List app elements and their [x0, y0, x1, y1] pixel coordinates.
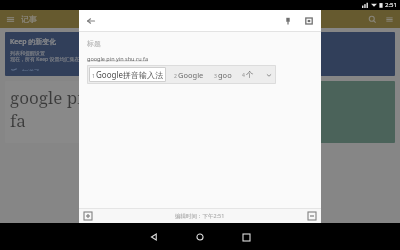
button[interactable]: Recents — [235, 226, 257, 248]
button[interactable]: Keep 的新变化 — [5, 32, 197, 76]
staticText: 记事 — [21, 14, 37, 24]
staticText: google pin yin shu ru fa — [87, 55, 148, 62]
button[interactable]: Back — [143, 226, 165, 248]
staticText: 1 — [92, 73, 95, 80]
staticText: 2:51 — [385, 1, 397, 9]
button[interactable]: Add — [84, 212, 92, 220]
staticText: google pin yin shu ru fa — [10, 86, 192, 132]
button[interactable]: Menu — [6, 15, 15, 24]
staticText: Google拼音输入法 — [96, 69, 163, 80]
button[interactable]: More options — [308, 212, 316, 220]
button[interactable]: 3 — [212, 70, 234, 80]
button[interactable]: google pin yin shu ru fa — [5, 81, 197, 143]
staticText: 4 — [242, 72, 245, 79]
staticText: goo — [218, 70, 232, 80]
staticText: Google — [178, 70, 204, 80]
button[interactable]: View options — [385, 15, 394, 24]
button[interactable]: 2 — [172, 70, 206, 80]
button[interactable]: More candidates — [264, 70, 274, 80]
button[interactable]: Pin note — [283, 16, 293, 26]
staticText: 现在，所有 Keep 设置均汇集在此 — [10, 56, 85, 63]
staticText: 编辑时间：下午2:51 — [175, 212, 225, 220]
staticText: 知道了 — [22, 68, 40, 71]
staticText: 列表和提醒设置 — [10, 50, 45, 56]
button[interactable]: Search — [368, 15, 377, 24]
button[interactable]: 知道了 — [10, 68, 40, 71]
button[interactable] — [203, 32, 395, 76]
button[interactable]: Home — [189, 226, 211, 248]
button[interactable]: Archive — [304, 16, 314, 26]
button[interactable]: 1 — [89, 67, 166, 82]
button[interactable]: 排列 — [203, 81, 395, 143]
staticText: Keep 的新变化 — [10, 37, 57, 47]
button[interactable]: 4 — [240, 70, 256, 79]
staticText: 个 — [246, 70, 254, 79]
staticText: 3 — [214, 73, 217, 80]
staticText: 标题 — [87, 39, 101, 48]
staticText: 2 — [174, 73, 177, 80]
button[interactable]: Back — [86, 16, 96, 26]
